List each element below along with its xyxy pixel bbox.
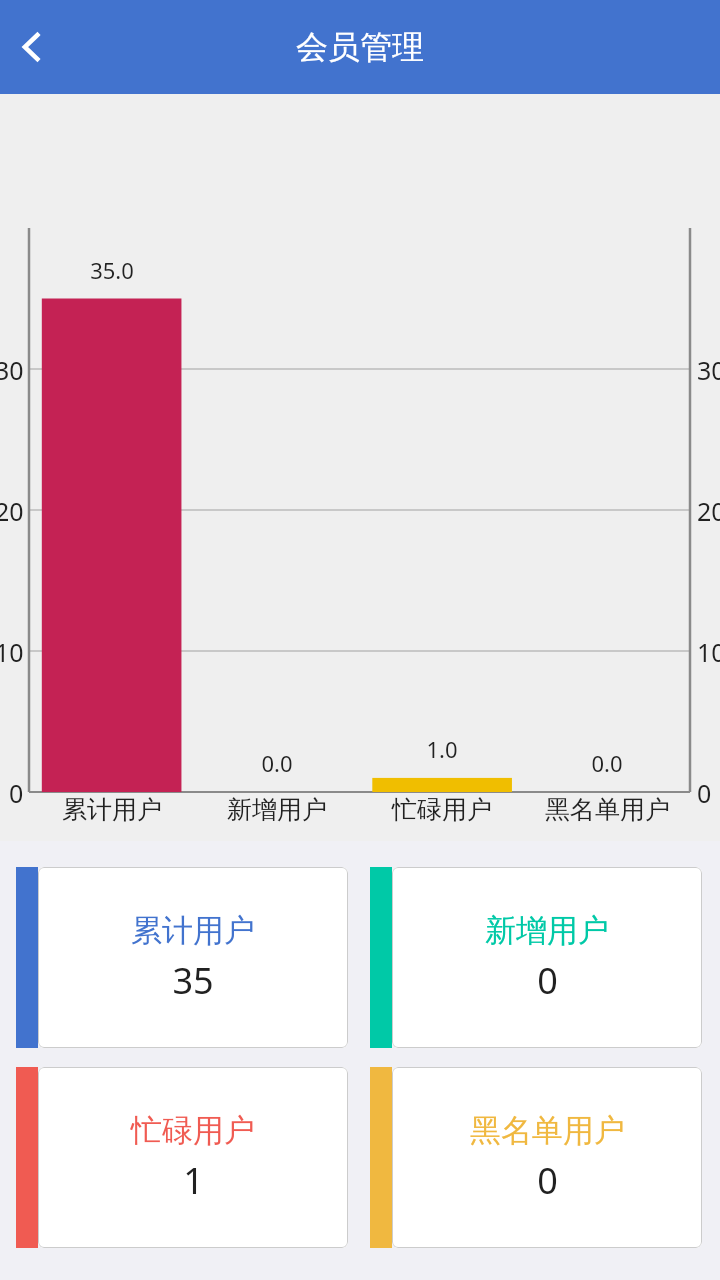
button[interactable]: 累计用户 — [16, 867, 348, 1048]
staticText: 10 — [697, 635, 720, 669]
staticText: 10 — [0, 635, 24, 669]
staticText: 35 — [172, 956, 214, 1005]
staticText: 新增用户 — [227, 794, 327, 825]
staticText: 30 — [0, 353, 24, 387]
staticText: 0.0 — [261, 748, 293, 778]
button[interactable]: 黑名单用户 — [370, 1067, 702, 1248]
staticText: 20 — [697, 494, 720, 528]
staticText: 新增用户 — [485, 911, 609, 950]
staticText: 黑名单用户 — [470, 1111, 625, 1150]
staticText: 20 — [0, 494, 24, 528]
staticText: 会员管理 — [296, 27, 424, 67]
staticText: 累计用户 — [131, 911, 255, 950]
staticText: 0.0 — [591, 748, 623, 778]
button[interactable]: Back — [0, 0, 64, 94]
staticText: 黑名单用户 — [545, 794, 670, 825]
staticText: 0 — [697, 776, 712, 810]
staticText: 忙碌用户 — [392, 794, 492, 825]
staticText: 1.0 — [426, 734, 458, 764]
staticText: 累计用户 — [62, 794, 162, 825]
staticText: 0 — [537, 956, 558, 1005]
staticText: 1 — [183, 1156, 204, 1205]
staticText: 0 — [9, 776, 24, 810]
button[interactable]: 新增用户 — [370, 867, 702, 1048]
staticText: 忙碌用户 — [131, 1111, 255, 1150]
staticText: 30 — [697, 353, 720, 387]
button[interactable]: 忙碌用户 — [16, 1067, 348, 1248]
staticText: 35.0 — [90, 255, 134, 285]
staticText: 0 — [537, 1156, 558, 1205]
